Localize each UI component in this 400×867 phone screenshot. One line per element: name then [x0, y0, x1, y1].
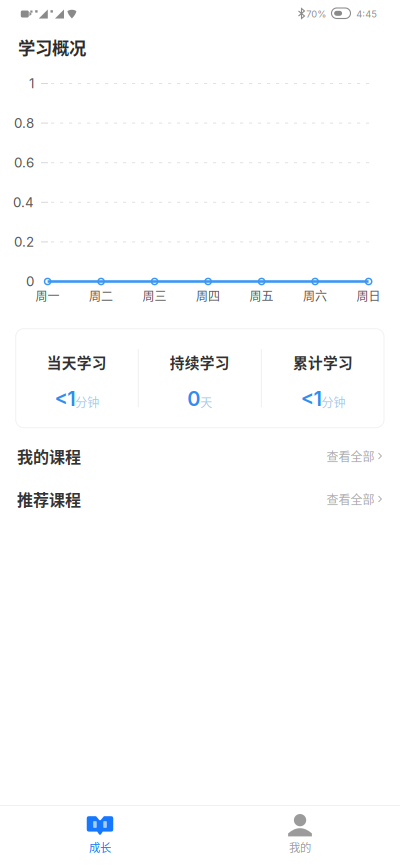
staticText: 周六 [303, 287, 327, 304]
staticText: 累计学习 [293, 352, 353, 373]
staticText: 查看全部 [326, 447, 374, 465]
staticText: 我的课程 [17, 444, 81, 468]
button[interactable]: 我的课程 [0, 436, 400, 476]
staticText: 1 [29, 75, 34, 91]
staticText: 4:45 [356, 8, 377, 20]
staticText: 0 [187, 387, 200, 411]
staticText: 0.4 [13, 194, 34, 210]
button[interactable]: 成长 [0, 814, 200, 862]
staticText: 学习概况 [18, 34, 86, 60]
staticText: 持续学习 [170, 352, 230, 373]
staticText: 推荐课程 [17, 487, 81, 511]
staticText: 周二 [89, 287, 113, 304]
button[interactable]: 推荐课程 [0, 479, 400, 519]
staticText: 0.6 [14, 155, 34, 171]
staticText: 我的 [289, 839, 311, 855]
staticText: 成长 [89, 839, 111, 855]
staticText: 周日 [357, 287, 381, 304]
button[interactable]: 我的 [200, 814, 400, 862]
staticText: 70% [306, 8, 326, 20]
staticText: 0 [26, 273, 34, 289]
staticText: 查看全部 [326, 490, 374, 508]
staticText: <1 [54, 387, 75, 411]
staticText: 天 [200, 393, 212, 411]
staticText: 周三 [143, 287, 167, 304]
staticText: 周四 [196, 287, 220, 304]
staticText: 周一 [36, 287, 60, 304]
staticText: 周五 [250, 287, 274, 304]
staticText: 分钟 [321, 393, 345, 411]
staticText: 0.2 [14, 234, 34, 250]
staticText: 当天学习 [47, 352, 107, 373]
staticText: 0.8 [14, 115, 34, 131]
staticText: 分钟 [75, 393, 99, 411]
staticText: <1 [300, 387, 321, 411]
